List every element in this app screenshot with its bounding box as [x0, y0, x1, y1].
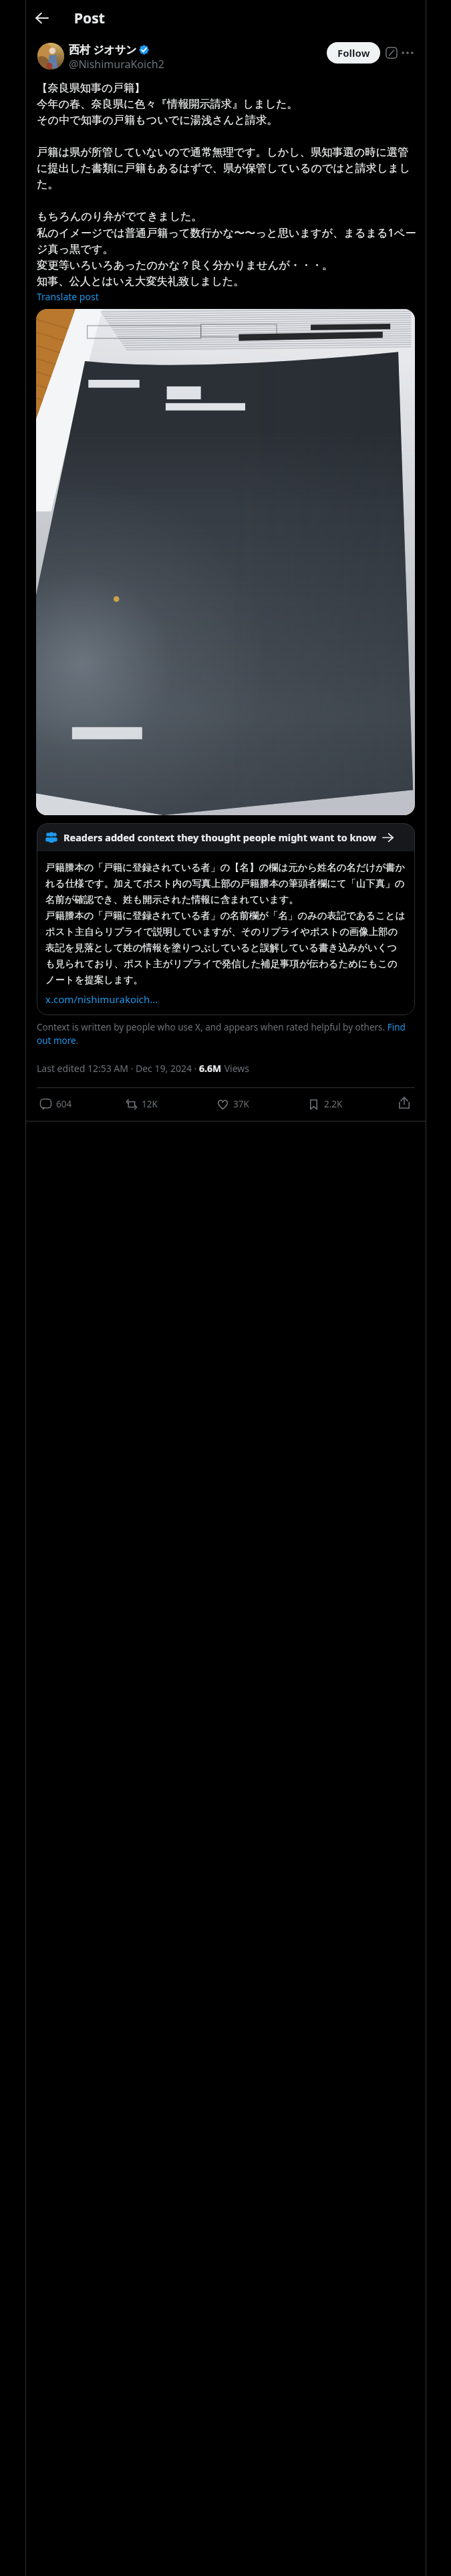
staticText: 西村 ジオサン — [69, 42, 137, 57]
staticText: 【奈良県知事の戸籍】 今年の春、奈良県に色々『情報開示請求』しました。 その中で… — [37, 81, 416, 288]
staticText: 604 — [56, 1098, 72, 1110]
staticText: @NishimuraKoich2 — [69, 57, 164, 72]
button[interactable]: Share — [395, 1093, 414, 1112]
staticText: Context is written by people who use X, … — [37, 1021, 415, 1047]
button[interactable]: More — [398, 43, 417, 62]
staticText: 2.2K — [324, 1098, 343, 1110]
button[interactable]: 2.2K — [308, 1095, 343, 1113]
button[interactable]: Readers added context they thought peopl… — [37, 823, 415, 851]
button[interactable]: Post image — [36, 309, 415, 815]
button[interactable]: Context is written by people who use X, … — [37, 1021, 415, 1047]
staticText: 6.6M — [199, 1062, 222, 1075]
button[interactable]: x.com/nishimurakoich... — [45, 992, 158, 1006]
staticText: Readers added context they thought peopl… — [63, 831, 377, 844]
staticText: x.com/nishimurakoich... — [45, 992, 158, 1006]
staticText: 12K — [142, 1098, 158, 1110]
button[interactable]: Follow — [327, 42, 380, 64]
button[interactable]: 37K — [217, 1095, 249, 1113]
staticText: Post — [74, 9, 105, 28]
staticText: Views — [222, 1062, 249, 1075]
staticText: 戸籍謄本の「戸籍に登録されている者」の名前欄が「名」のみの表記であることはポスト… — [45, 909, 406, 986]
button[interactable]: Back — [29, 5, 55, 31]
button[interactable]: Grok — [382, 43, 401, 62]
staticText: 37K — [233, 1098, 249, 1110]
staticText: 戸籍謄本の「戸籍に登録されている者」の【名】の欄は元から姓名の名だけが書かれる仕… — [45, 861, 406, 906]
staticText: Follow — [337, 46, 370, 60]
button[interactable]: Translate post — [37, 290, 99, 303]
button[interactable]: 604 — [40, 1095, 72, 1113]
button[interactable]: Profile picture — [37, 43, 64, 70]
button[interactable]: 12K — [126, 1095, 158, 1113]
staticText: Last edited 12:53 AM · Dec 19, 2024 · — [37, 1062, 199, 1075]
staticText: Translate post — [37, 290, 99, 303]
